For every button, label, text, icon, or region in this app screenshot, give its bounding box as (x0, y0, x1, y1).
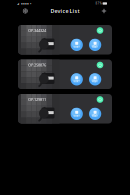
button[interactable]: OP-258876 (18, 59, 112, 89)
button[interactable]: Wash (89, 73, 101, 85)
staticText: Wash (92, 114, 98, 117)
staticText: Timer (73, 114, 80, 117)
staticText: Device List (50, 7, 79, 15)
staticText: Wash (92, 79, 98, 83)
staticText: Wash (92, 45, 98, 48)
button[interactable]: Language (21, 7, 29, 15)
button[interactable]: Wash (89, 108, 101, 120)
staticText: ◢ ▪▪▪▪ ▾ (17, 2, 31, 5)
staticText: OP-344324 (28, 28, 46, 33)
button[interactable]: OP-344324 (18, 25, 112, 54)
button[interactable]: Add device (100, 7, 108, 15)
staticText: Timer (73, 45, 80, 48)
button[interactable]: Timer (71, 39, 83, 51)
staticText: 87% (95, 2, 101, 5)
button[interactable]: Timer (71, 108, 83, 120)
button[interactable]: Timer (71, 73, 83, 85)
staticText: OP-129811 (28, 97, 46, 102)
staticText: OP-258876 (28, 62, 46, 67)
staticText: Timer (73, 79, 80, 83)
button[interactable]: OP-129811 (18, 94, 112, 123)
button[interactable]: Wash (89, 39, 101, 51)
